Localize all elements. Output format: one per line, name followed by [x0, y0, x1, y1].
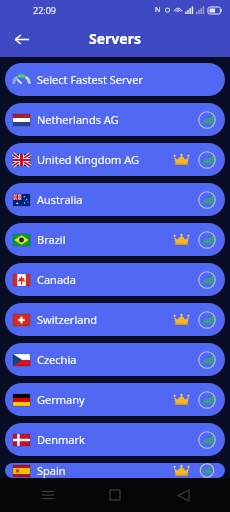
staticText: N — [155, 5, 161, 15]
button[interactable]: Czechia — [5, 343, 225, 376]
other: Signal strength — [198, 271, 216, 289]
staticText: Brazil — [37, 232, 66, 247]
staticText: Germany — [37, 392, 85, 407]
button[interactable]: Select Fastest Server — [5, 63, 225, 96]
button[interactable]: Back — [163, 478, 203, 512]
other: Signal strength — [198, 111, 216, 129]
staticText: Netherlands AG — [37, 112, 119, 127]
other: Signal strength — [198, 191, 216, 209]
staticText: Servers — [89, 29, 141, 48]
button[interactable]: United Kingdom AG — [5, 143, 225, 176]
button[interactable]: Denmark — [5, 423, 225, 456]
staticText: Canada — [37, 272, 77, 287]
staticText: Australia — [37, 192, 83, 207]
button[interactable]: Netherlands AG — [5, 103, 225, 136]
other: Signal strength — [198, 431, 216, 449]
other: Signal strength — [198, 463, 216, 478]
other: Signal strength — [198, 231, 216, 249]
button[interactable]: Canada — [5, 263, 225, 296]
other: Signal strength — [198, 391, 216, 409]
other: Signal strength — [198, 351, 216, 369]
staticText: Denmark — [37, 432, 85, 447]
button[interactable]: Brazil — [5, 223, 225, 256]
button[interactable]: Switzerland — [5, 303, 225, 336]
button[interactable]: Spain — [5, 463, 225, 478]
button[interactable]: Recent apps — [28, 478, 68, 512]
button[interactable]: Home — [95, 478, 135, 512]
staticText: United Kingdom AG — [37, 152, 140, 167]
button[interactable]: Germany — [5, 383, 225, 416]
staticText: 22:09 — [33, 4, 57, 16]
staticText: Switzerland — [37, 312, 97, 327]
other: Signal strength — [198, 311, 216, 329]
staticText: Spain — [37, 463, 66, 478]
other: Signal strength — [198, 151, 216, 169]
staticText: Select Fastest Server — [37, 72, 143, 87]
button[interactable]: Back — [6, 24, 36, 54]
button[interactable]: Australia — [5, 183, 225, 216]
staticText: Czechia — [37, 352, 77, 367]
